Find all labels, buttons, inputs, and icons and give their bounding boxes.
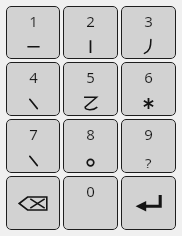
button[interactable]: Enter xyxy=(121,176,176,230)
staticText: 5 xyxy=(86,67,95,87)
button[interactable]: 4 xyxy=(6,62,60,116)
button[interactable]: 3 xyxy=(121,6,176,59)
button[interactable]: 7 xyxy=(6,119,60,173)
staticText: 7 xyxy=(29,124,38,144)
staticText: 2 xyxy=(86,11,95,31)
staticText: 0 xyxy=(86,181,95,201)
button[interactable]: 0 xyxy=(63,176,118,230)
button[interactable]: 1 xyxy=(6,6,60,59)
button[interactable]: 5 xyxy=(63,62,118,116)
button[interactable]: 6 xyxy=(121,62,176,116)
staticText: 8 xyxy=(86,124,95,144)
staticText: 6 xyxy=(144,67,153,87)
staticText: 3 xyxy=(144,11,153,31)
button[interactable]: 9 xyxy=(121,119,176,173)
staticText: 1 xyxy=(29,11,38,31)
staticText: ? xyxy=(145,153,152,168)
staticText: 4 xyxy=(29,67,38,87)
staticText: 9 xyxy=(144,124,153,144)
button[interactable]: 2 xyxy=(63,6,118,59)
button[interactable]: 8 xyxy=(63,119,118,173)
button[interactable]: Backspace xyxy=(6,176,60,230)
